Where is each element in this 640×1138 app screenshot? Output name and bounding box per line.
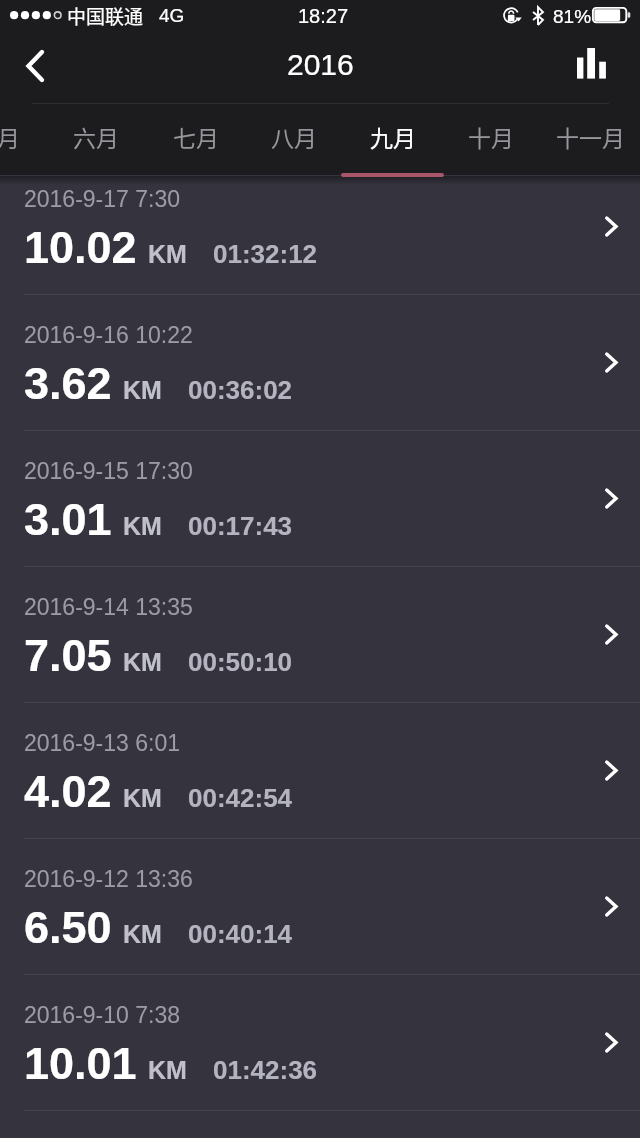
staticText: 2016-9-17 7:30 (24, 186, 181, 212)
staticText: KM (123, 512, 162, 540)
button[interactable]: 2016-9-16 10:22 (0, 295, 640, 431)
staticText: 10.01 (24, 1038, 137, 1088)
staticText: 01:32:12 (213, 239, 318, 268)
staticText: 00:40:14 (188, 919, 293, 948)
button[interactable]: 五月 (0, 103, 46, 175)
staticText: 九月 (370, 120, 416, 153)
staticText: KM (148, 240, 187, 268)
button[interactable]: Back (2, 40, 68, 91)
other: Open run details (605, 216, 618, 237)
staticText: 中国联通 (67, 2, 144, 30)
button[interactable]: 2016-9-15 17:30 (0, 431, 640, 567)
button[interactable]: 2016-9-12 13:36 (0, 839, 640, 975)
staticText: 81% (553, 6, 592, 27)
staticText: KM (148, 1056, 187, 1084)
button[interactable]: 十月 (442, 103, 540, 175)
button[interactable]: 2016-9-13 6:01 (0, 703, 640, 839)
staticText: 4G (159, 5, 185, 26)
button[interactable]: 2016-9-14 13:35 (0, 567, 640, 703)
staticText: KM (123, 648, 162, 676)
staticText: 6.50 (24, 902, 112, 952)
staticText: 00:50:10 (188, 647, 293, 676)
other: Open run details (605, 352, 618, 373)
other: Open run details (605, 1032, 618, 1053)
button[interactable]: 七月 (147, 103, 245, 175)
staticText: 3.62 (24, 358, 112, 408)
button[interactable]: 2016-9-10 7:38 (0, 975, 640, 1111)
other: Open run details (605, 760, 618, 781)
staticText: 3.01 (24, 494, 112, 544)
staticText: 十一月 (556, 120, 625, 153)
staticText: KM (123, 784, 162, 812)
staticText: 2016-9-14 13:35 (24, 594, 193, 620)
button[interactable]: 2016-9-17 7:30 (0, 159, 640, 295)
button[interactable]: 九月 (344, 103, 442, 175)
staticText: 2016-9-15 17:30 (24, 458, 193, 484)
button[interactable]: 八月 (245, 103, 343, 175)
button[interactable]: Statistics (560, 40, 624, 103)
other: Open run details (605, 896, 618, 917)
staticText: 七月 (173, 120, 219, 153)
staticText: 十月 (468, 120, 514, 153)
button[interactable]: 六月 (47, 103, 145, 175)
staticText: 2016-9-10 7:38 (24, 1002, 181, 1028)
staticText: 2016-9-16 10:22 (24, 322, 193, 348)
staticText: KM (123, 376, 162, 404)
staticText: 八月 (271, 120, 317, 153)
staticText: 18:27 (298, 5, 349, 27)
other: Open run details (605, 624, 618, 645)
staticText: 4.02 (24, 766, 112, 816)
staticText: 00:36:02 (188, 375, 293, 404)
staticText: 六月 (73, 120, 119, 153)
staticText: KM (123, 920, 162, 948)
other: Open run details (605, 488, 618, 509)
staticText: 7.05 (24, 630, 112, 680)
staticText: 2016-9-12 13:36 (24, 866, 193, 892)
button[interactable]: 十一月 (541, 103, 639, 175)
staticText: 五月 (0, 120, 20, 153)
staticText: 00:17:43 (188, 511, 293, 540)
staticText: 00:42:54 (188, 783, 293, 812)
staticText: 10.02 (24, 222, 137, 272)
staticText: 01:42:36 (213, 1055, 318, 1084)
staticText: 2016-9-13 6:01 (24, 730, 181, 756)
staticText: 2016 (287, 48, 354, 82)
